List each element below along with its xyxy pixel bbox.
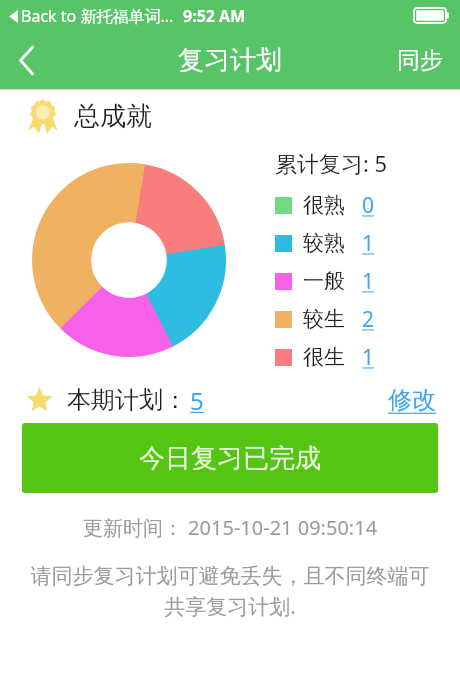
staticText: 更新时间： 2015-10-21 09:50:14: [0, 514, 460, 541]
button[interactable]: 5: [187, 384, 207, 417]
staticText: 很生: [303, 344, 345, 370]
staticText: 很熟: [303, 192, 345, 218]
staticText: 5: [190, 384, 204, 417]
button[interactable]: Back: [0, 31, 54, 89]
staticText: 1: [362, 343, 375, 372]
staticText: 请同步复习计划可避免丢失，且不同终端可共享复习计划.: [24, 563, 436, 620]
staticText: 总成就: [74, 100, 152, 133]
staticText: 较熟: [303, 230, 345, 256]
staticText: 复习计划: [178, 44, 282, 77]
button[interactable]: 很生: [257, 338, 460, 376]
staticText: 0: [362, 191, 375, 220]
staticText: 较生: [303, 306, 345, 332]
button[interactable]: 修改: [384, 381, 440, 419]
staticText: 同步: [397, 46, 443, 75]
button[interactable]: 很熟: [257, 186, 460, 224]
staticText: 本期计划：: [67, 385, 187, 415]
button[interactable]: 今日复习已完成: [22, 423, 438, 493]
staticText: Back to 新托福单词...: [21, 5, 174, 27]
staticText: 累计复习: 5: [275, 148, 388, 178]
button[interactable]: 一般: [257, 262, 460, 300]
button[interactable]: 较生: [257, 300, 460, 338]
staticText: 修改: [388, 385, 436, 415]
button[interactable]: 较熟: [257, 224, 460, 262]
staticText: 一般: [303, 268, 345, 294]
button[interactable]: 同步: [380, 31, 460, 89]
staticText: 1: [362, 229, 375, 258]
staticText: 2: [362, 305, 375, 334]
staticText: 9:52 AM: [183, 5, 246, 27]
staticText: 今日复习已完成: [139, 442, 321, 475]
staticText: 1: [362, 267, 375, 296]
